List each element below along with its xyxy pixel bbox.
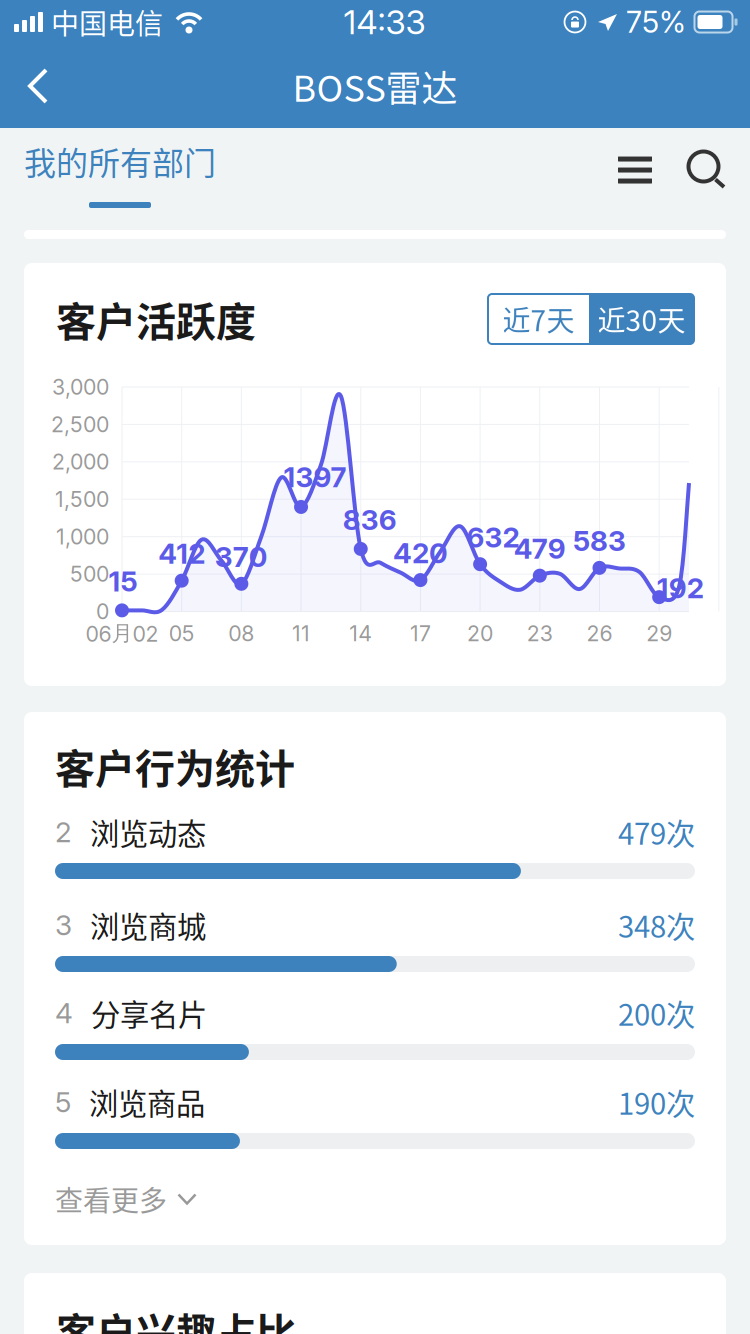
staticText: 479 bbox=[514, 532, 566, 566]
staticText: 632 bbox=[467, 520, 520, 554]
staticText: 348次 bbox=[618, 904, 695, 946]
staticText: 500 bbox=[70, 561, 109, 587]
staticText: 浏览动态 bbox=[90, 811, 206, 853]
staticText: 479次 bbox=[618, 811, 695, 853]
staticText: 4 bbox=[55, 996, 73, 1030]
staticText: 200次 bbox=[618, 992, 695, 1034]
staticText: 客户兴趣占比 bbox=[56, 1301, 296, 1334]
staticText: 17 bbox=[410, 621, 431, 646]
staticText: 浏览商城 bbox=[90, 904, 206, 946]
staticText: 75% bbox=[626, 4, 686, 40]
staticText: 08 bbox=[228, 621, 254, 646]
staticText: 192 bbox=[657, 571, 704, 605]
staticText: 近7天 bbox=[502, 299, 574, 339]
staticText: 1,500 bbox=[55, 486, 109, 512]
staticText: 1,000 bbox=[56, 524, 109, 550]
staticText: 20 bbox=[467, 621, 493, 646]
staticText: 查看更多 bbox=[55, 1179, 167, 1219]
button[interactable]: Menu bbox=[605, 140, 665, 218]
staticText: 浏览商品 bbox=[89, 1081, 205, 1123]
staticText: 29 bbox=[646, 621, 672, 646]
button[interactable]: 查看更多 bbox=[55, 1149, 197, 1245]
staticText: 2,500 bbox=[51, 411, 109, 437]
staticText: 2,000 bbox=[52, 449, 109, 475]
staticText: 26 bbox=[586, 621, 612, 646]
staticText: 05 bbox=[169, 621, 195, 646]
staticText: 15 bbox=[108, 564, 137, 598]
button[interactable]: 近30天 bbox=[589, 294, 694, 344]
button[interactable]: Search bbox=[665, 140, 750, 218]
staticText: 11 bbox=[292, 621, 310, 646]
button[interactable]: Back bbox=[0, 44, 70, 128]
staticText: 2 bbox=[55, 815, 72, 849]
staticText: 分享名片 bbox=[91, 992, 207, 1034]
staticText: 3,000 bbox=[52, 374, 109, 400]
staticText: 06月02 bbox=[85, 620, 158, 647]
staticText: 5 bbox=[55, 1085, 71, 1119]
staticText: 3 bbox=[55, 908, 72, 942]
staticText: 412 bbox=[158, 537, 205, 571]
staticText: 420 bbox=[393, 536, 448, 570]
staticText: 客户行为统计 bbox=[55, 737, 295, 795]
staticText: 23 bbox=[527, 621, 553, 646]
staticText: 中国电信 bbox=[51, 2, 163, 42]
staticText: 190次 bbox=[618, 1081, 695, 1123]
staticText: 370 bbox=[215, 540, 268, 574]
staticText: 0 bbox=[96, 599, 109, 624]
staticText: 14:33 bbox=[343, 2, 425, 42]
staticText: BOSS雷达 bbox=[292, 60, 457, 112]
button[interactable]: 我的所有部门 bbox=[0, 134, 236, 224]
staticText: 近30天 bbox=[597, 299, 685, 339]
staticText: 836 bbox=[343, 503, 397, 537]
staticText: 我的所有部门 bbox=[24, 138, 216, 184]
staticText: 客户活跃度 bbox=[56, 290, 256, 348]
staticText: 14 bbox=[349, 621, 372, 646]
staticText: 583 bbox=[573, 524, 626, 558]
button[interactable]: 近7天 bbox=[488, 294, 589, 344]
staticText: 1397 bbox=[284, 460, 347, 494]
